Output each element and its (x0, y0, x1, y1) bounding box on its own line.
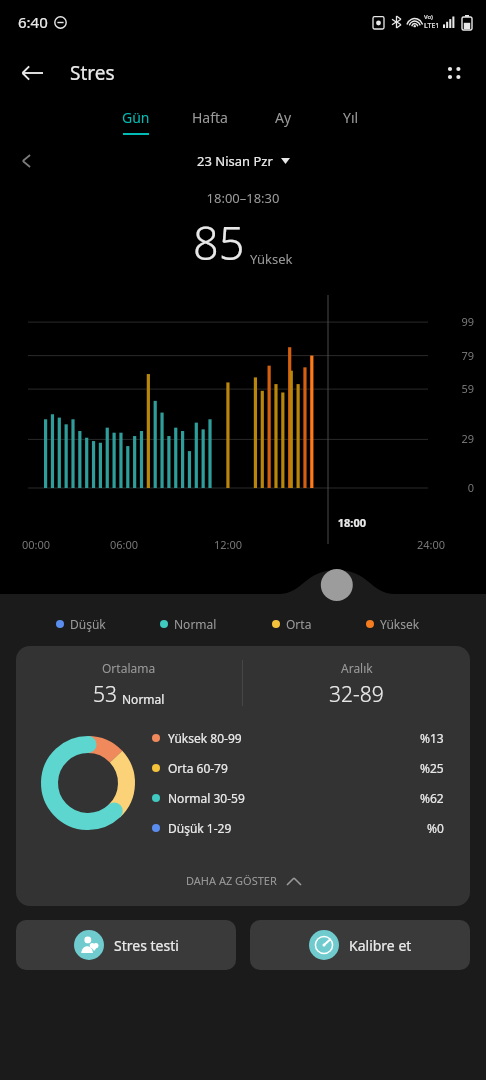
staticText: Normal (174, 616, 217, 632)
button[interactable]: DAHA AZ GÖSTER (16, 859, 470, 902)
staticText: %25 (420, 760, 444, 776)
staticText: Hafta (192, 108, 228, 127)
staticText: Stres testi (114, 936, 179, 955)
staticText: Aralık (341, 660, 373, 676)
button[interactable]: Gün (118, 102, 154, 141)
button[interactable]: 23 Nisan Pzr (189, 148, 298, 174)
staticText: 85 (193, 212, 245, 273)
staticText: Yüksek (380, 616, 420, 632)
staticText: 0 (0, 480, 474, 495)
button[interactable]: Kalibre et (250, 920, 470, 970)
staticText: 06:00 (110, 537, 139, 552)
staticText: 32-89 (329, 680, 384, 709)
staticText: 6:40 (18, 12, 48, 32)
staticText: Düşük (70, 616, 106, 632)
staticText: %62 (420, 790, 444, 806)
staticText: Orta (286, 616, 312, 632)
staticText: 99 (0, 314, 474, 329)
staticText: Vo) (424, 13, 433, 21)
staticText: Normal (122, 691, 165, 707)
staticText: 18:00 (0, 515, 366, 530)
staticText: 18:00–18:30 (0, 189, 486, 207)
staticText: Yıl (343, 108, 359, 127)
staticText: Yüksek (250, 250, 293, 268)
button[interactable]: Hafta (188, 102, 232, 141)
staticText: DAHA AZ GÖSTER (186, 873, 277, 888)
staticText: Kalibre et (349, 936, 412, 955)
button[interactable]: Ay (266, 102, 300, 141)
staticText: 12:00 (214, 537, 243, 552)
staticText: LTE1 (424, 21, 440, 31)
button[interactable]: Previous day (8, 142, 46, 180)
staticText: 23 Nisan Pzr (197, 152, 273, 170)
staticText: Stres (70, 60, 115, 86)
staticText: Ortalama (102, 660, 156, 676)
staticText: Ay (275, 108, 292, 127)
staticText: Düşük 1-29 (168, 820, 232, 836)
staticText: 59 (0, 381, 474, 396)
button[interactable]: Stres testi (16, 920, 236, 970)
button[interactable]: Back (10, 51, 54, 95)
staticText: Gün (122, 108, 150, 127)
staticText: 79 (0, 348, 474, 363)
staticText: %13 (420, 730, 444, 746)
button[interactable]: More options (432, 51, 476, 95)
button[interactable]: Yıl (334, 102, 368, 141)
staticText: %0 (427, 820, 444, 836)
staticText: 29 (0, 431, 474, 446)
staticText: 24:00 (417, 537, 446, 552)
staticText: Orta 60-79 (168, 760, 228, 776)
staticText: 53 (93, 680, 117, 709)
staticText: Yüksek 80-99 (168, 730, 242, 746)
staticText: Normal 30-59 (168, 790, 245, 806)
staticText: 00:00 (22, 537, 51, 552)
